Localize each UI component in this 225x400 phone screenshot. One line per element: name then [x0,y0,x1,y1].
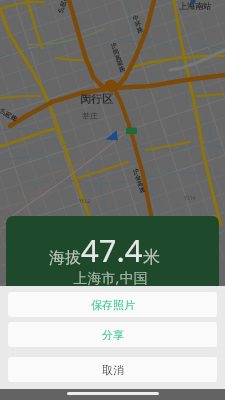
staticText: 沪 [0,107,8,117]
staticText: Y314 [184,195,196,202]
staticText: 沪 [132,167,140,177]
staticText: 沪 [57,5,65,15]
staticText: 米 [143,247,160,268]
button[interactable]: 分享 [8,322,217,347]
staticText: 架 [116,58,124,68]
staticText: 中 [132,13,140,23]
staticText: 金 [134,173,142,183]
staticText: 高 [136,179,144,189]
staticText: 闵行区 [80,92,113,106]
staticText: 海拔 [49,248,81,268]
staticText: 速 [138,185,146,195]
staticText: 闵 [112,47,120,57]
staticText: 沪 [110,41,118,51]
staticText: 47.4 [81,229,143,271]
staticText: 高 [114,53,122,63]
staticText: 闵 [3,110,13,120]
staticText: 莘庄 [82,111,98,121]
staticText: 路 [136,25,144,35]
staticText: 上海市,中国 [6,268,217,286]
staticText: 保存照片 [91,298,135,312]
staticText: 分享 [102,328,124,342]
button[interactable]: 取消 [8,357,217,382]
staticText: 路 [118,64,126,74]
staticText: 高 [61,0,69,3]
staticText: Y662 [79,198,91,205]
staticText: 环 [134,19,142,29]
staticText: 闵 [59,0,67,9]
staticText: 路 [9,113,19,123]
button[interactable]: 保存照片 [8,292,217,317]
staticText: 取消 [102,363,124,377]
staticText: 上海南站 [179,1,211,11]
